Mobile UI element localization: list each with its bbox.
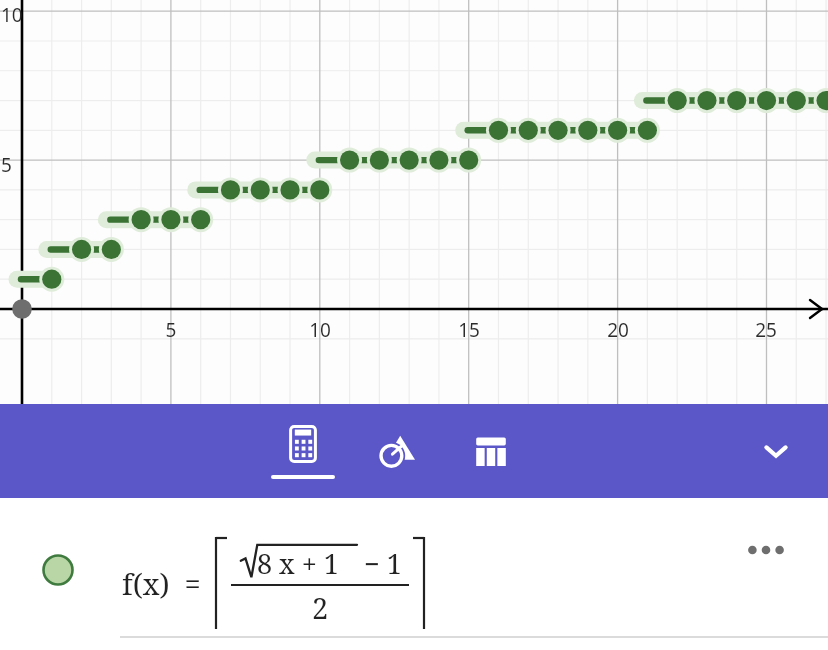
button[interactable]: Geometry	[364, 404, 430, 498]
button[interactable]: Calculator	[270, 404, 336, 498]
button[interactable]: Toggle visibility	[0, 498, 828, 650]
staticText: 15	[455, 317, 483, 343]
button[interactable]: Toggle visibility	[42, 554, 74, 586]
staticText: f(x) =	[122, 564, 201, 603]
staticText: 5	[157, 317, 185, 343]
staticText: 10	[1, 2, 23, 28]
staticText: 25	[752, 317, 780, 343]
staticText: 2	[312, 588, 329, 627]
staticText: 10	[306, 317, 334, 343]
staticText: 8 x + 1	[257, 545, 339, 582]
button[interactable]: Table	[458, 404, 524, 498]
button[interactable]: More options	[738, 522, 794, 578]
staticText: 5	[1, 152, 12, 178]
staticText: 20	[604, 317, 632, 343]
staticText: − 1	[357, 545, 402, 582]
button[interactable]: Collapse	[748, 423, 804, 479]
